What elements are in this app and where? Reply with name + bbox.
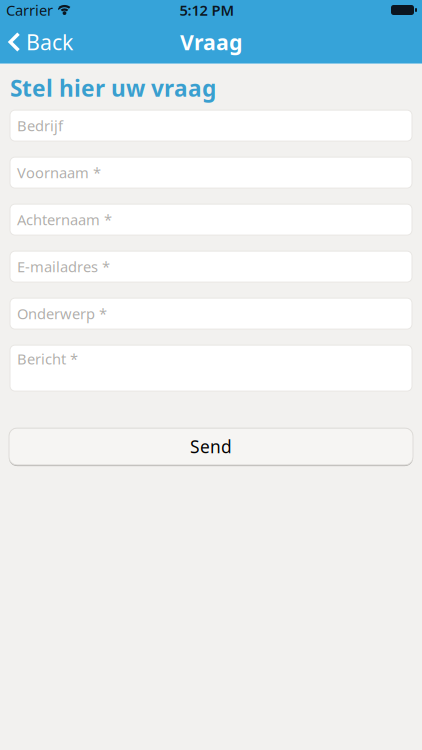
button[interactable]: Bericht * [10, 345, 412, 391]
staticText: Onderwerp * [17, 304, 107, 323]
button[interactable]: Voornaam * [10, 157, 412, 188]
button[interactable]: Send [9, 428, 413, 466]
button[interactable]: Back [0, 20, 73, 64]
staticText: Achternaam * [17, 210, 112, 229]
staticText: Back [26, 28, 73, 56]
button[interactable]: Bedrijf [10, 110, 412, 141]
staticText: Send [190, 435, 232, 458]
button[interactable]: Achternaam * [10, 204, 412, 235]
staticText: Stel hier uw vraag [10, 73, 216, 103]
staticText: Bedrijf [17, 116, 63, 135]
staticText: Carrier [6, 0, 53, 20]
staticText: Bericht * [17, 349, 78, 369]
staticText: Voornaam * [17, 163, 101, 182]
button[interactable]: Onderwerp * [10, 298, 412, 329]
button[interactable]: E-mailadres * [10, 251, 412, 282]
staticText: Vraag [180, 28, 242, 56]
staticText: 5:12 PM [179, 0, 234, 20]
staticText: E-mailadres * [17, 257, 110, 276]
